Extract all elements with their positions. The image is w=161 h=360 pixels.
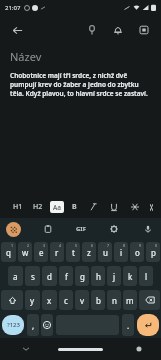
staticText: 0 [155,243,158,248]
staticText: e [39,247,44,258]
button[interactable]: Backspace [139,290,160,310]
button[interactable]: Enter [137,314,159,336]
button[interactable]: Emoji [41,314,53,336]
button[interactable]: Back [7,20,27,40]
button[interactable]: m [123,290,137,310]
staticText: d [47,271,52,282]
staticText: g [80,271,85,282]
button[interactable]: , [27,314,39,336]
button[interactable]: p [146,242,160,262]
staticText: H2 [33,202,43,212]
staticText: j [113,271,116,282]
button[interactable]: u [98,242,112,262]
staticText: . [127,320,130,331]
button[interactable]: v [75,290,89,310]
staticText: 1 [11,243,14,248]
button[interactable]: q [1,242,16,262]
button[interactable]: H2 [32,201,44,213]
button[interactable]: y [25,290,40,310]
staticText: p [151,247,156,258]
button[interactable]: h [91,266,105,286]
button[interactable]: H1 [12,201,24,213]
button[interactable]: Clipboard [41,222,55,236]
staticText: c [64,295,68,306]
staticText: v [80,295,85,306]
staticText: h [96,271,101,282]
staticText: s [31,271,35,282]
button[interactable]: ?123 [2,315,24,335]
staticText: Chobotnice mají tři srdce, z nichž dvě p… [10,71,151,98]
staticText: H1 [13,202,23,212]
staticText: B [72,202,77,212]
button[interactable]: n [107,290,121,310]
staticText: GIF [76,225,86,233]
staticText: o [135,247,140,258]
staticText: 7 [107,243,110,248]
staticText: 5 [75,243,78,248]
button[interactable]: B [71,201,78,213]
button[interactable]: f [59,266,73,286]
button[interactable]: g [75,266,89,286]
staticText: l [145,271,148,282]
staticText: q [6,247,11,258]
button[interactable]: w [18,242,32,262]
button[interactable]: c [59,290,73,310]
staticText: 2 [27,243,30,248]
button[interactable]: Google Lens [6,222,21,237]
button[interactable]: x [42,290,57,310]
button[interactable]: i [114,242,128,262]
staticText: y [30,295,35,306]
button[interactable]: Archive [134,20,154,40]
staticText: 21:07 [5,4,21,12]
staticText: x [47,295,52,306]
button[interactable]: Aa [50,201,64,213]
button[interactable]: d [42,266,57,286]
staticText: 3 [43,243,46,248]
button[interactable]: Shift [1,290,23,310]
button[interactable]: a [8,266,23,286]
button[interactable]: Voice input [141,222,155,236]
button[interactable]: l [139,266,153,286]
button[interactable]: Italic [87,201,99,213]
staticText: Aa [53,203,61,212]
staticText: f [65,271,68,282]
staticText: w [22,247,29,258]
button[interactable]: Keyboard settings [133,343,145,355]
staticText: ?123 [7,321,20,329]
staticText: 8 [123,243,126,248]
staticText: 6 [91,243,94,248]
button[interactable]: Clear formatting [150,201,153,213]
button[interactable]: Settings [107,222,121,236]
staticText: t [72,247,75,258]
button[interactable]: k [123,266,137,286]
staticText: u [103,247,108,258]
button[interactable]: Hide keyboard [20,343,32,355]
button[interactable]: . [122,314,134,336]
button[interactable]: GIF [75,224,87,234]
button[interactable]: b [91,290,105,310]
staticText: z [87,247,91,258]
staticText: 9 [139,243,142,248]
button[interactable]: z [82,242,96,262]
button[interactable]: j [107,266,121,286]
button[interactable]: s [25,266,40,286]
staticText: , [32,320,35,331]
staticText: b [96,295,101,306]
staticText: 4 [59,243,62,248]
button[interactable]: e [34,242,48,262]
staticText: k [128,271,133,282]
staticText: a [13,271,18,282]
button[interactable]: o [130,242,144,262]
button[interactable]: Strikethrough [129,201,141,213]
staticText: Název [10,49,42,64]
button[interactable]: r [50,242,64,262]
button[interactable]: Reminder [108,20,128,40]
button[interactable] [58,348,103,351]
staticText: n [112,295,117,306]
button[interactable]: Pin [82,20,102,40]
staticText: i [120,247,123,258]
button[interactable]: Underline [108,201,120,213]
staticText: m [126,295,134,306]
button[interactable]: t [66,242,80,262]
